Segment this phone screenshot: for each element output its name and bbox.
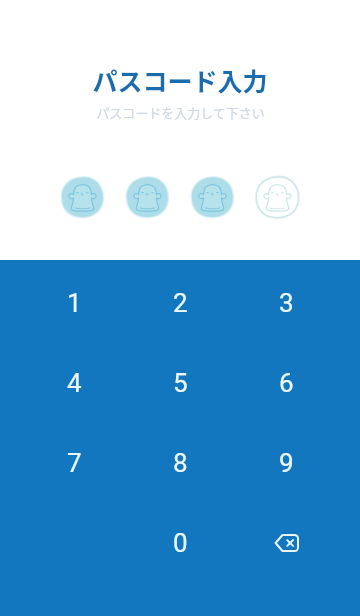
button[interactable]: 0 [127, 503, 233, 583]
button[interactable]: 2 [127, 263, 233, 343]
button[interactable]: 1 [21, 263, 127, 343]
staticText: 9 [279, 448, 294, 478]
staticText: 2 [173, 288, 188, 318]
button[interactable]: 4 [21, 343, 127, 423]
staticText: 8 [173, 448, 188, 478]
staticText: 5 [173, 368, 188, 398]
staticText: 6 [279, 368, 294, 398]
staticText: 1 [67, 288, 82, 318]
other: Backspace [274, 534, 299, 552]
button[interactable]: Backspace [233, 503, 339, 583]
staticText: 4 [67, 368, 82, 398]
button[interactable]: 6 [233, 343, 339, 423]
staticText: パスコードを入力して下さい [96, 103, 265, 122]
button[interactable]: 3 [233, 263, 339, 343]
button[interactable]: 5 [127, 343, 233, 423]
staticText: 0 [173, 528, 188, 558]
staticText: 3 [279, 288, 294, 318]
button[interactable]: 7 [21, 423, 127, 503]
button[interactable]: 9 [233, 423, 339, 503]
button[interactable]: 8 [127, 423, 233, 503]
staticText: パスコード入力 [92, 62, 268, 98]
staticText: 7 [67, 448, 82, 478]
